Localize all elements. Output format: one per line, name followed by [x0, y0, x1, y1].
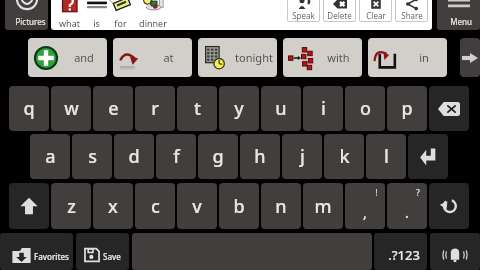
button[interactable]: b — [219, 183, 259, 229]
button[interactable]: p — [387, 86, 427, 131]
button[interactable]: Sound — [430, 233, 480, 270]
button[interactable]: what — [53, 0, 86, 30]
staticText: m — [314, 194, 332, 219]
staticText: q — [23, 96, 35, 121]
staticText: k — [339, 144, 350, 169]
staticText: x — [108, 194, 118, 219]
button[interactable]: w — [51, 86, 91, 131]
button[interactable]: is — [85, 0, 108, 30]
staticText: t — [194, 96, 201, 121]
staticText: in — [419, 50, 429, 65]
button[interactable]: for — [108, 0, 132, 30]
staticText: and — [74, 50, 94, 65]
staticText: Favorites — [34, 251, 69, 262]
staticText: n — [275, 194, 287, 219]
staticText: Speak — [292, 10, 315, 21]
staticText: ! — [375, 187, 378, 198]
staticText: Delete — [327, 10, 352, 21]
button[interactable]: a — [30, 134, 70, 179]
staticText: with — [327, 50, 350, 65]
staticText: p — [401, 96, 413, 121]
button[interactable]: at — [113, 38, 192, 77]
button[interactable]: i — [303, 86, 343, 131]
button[interactable]: g — [198, 134, 238, 179]
button[interactable]: n — [261, 183, 301, 229]
staticText: , — [363, 203, 367, 222]
button[interactable]: Save — [76, 233, 129, 270]
staticText: j — [300, 144, 305, 169]
button[interactable]: v — [177, 183, 217, 229]
button[interactable]: e — [93, 86, 133, 131]
staticText: Pictures — [15, 16, 46, 27]
button[interactable]: ! — [345, 183, 385, 229]
button[interactable]: More suggestions — [460, 38, 480, 77]
staticText: a — [45, 144, 56, 169]
button[interactable]: j — [282, 134, 322, 179]
button[interactable]: and — [28, 38, 107, 77]
button[interactable]: Share — [395, 0, 428, 22]
button[interactable]: m — [303, 183, 343, 229]
button[interactable]: Undo — [429, 183, 469, 229]
button[interactable]: y — [219, 86, 259, 131]
button[interactable]: o — [345, 86, 385, 131]
button[interactable]: k — [324, 134, 364, 179]
staticText: at — [163, 50, 174, 65]
button[interactable]: what — [51, 0, 432, 30]
staticText: .?123 — [388, 246, 420, 264]
staticText: l — [384, 144, 389, 169]
staticText: v — [192, 194, 202, 219]
button[interactable]: Clear — [359, 0, 392, 22]
button[interactable]: with — [283, 38, 362, 77]
staticText: Menu — [450, 16, 472, 27]
button[interactable]: Delete — [323, 0, 356, 22]
staticText: f — [173, 144, 180, 169]
button[interactable]: x — [93, 183, 133, 229]
staticText: w — [64, 96, 79, 121]
button[interactable]: r — [135, 86, 175, 131]
button[interactable]: Menu — [437, 0, 480, 30]
button[interactable]: d — [114, 134, 154, 179]
button[interactable]: tonight — [198, 38, 277, 77]
staticText: z — [67, 194, 76, 219]
staticText: Share — [401, 10, 423, 21]
staticText: what — [59, 17, 80, 29]
staticText: Save — [103, 251, 121, 262]
button[interactable]: h — [240, 134, 280, 179]
staticText: for — [114, 17, 127, 29]
staticText: e — [108, 96, 119, 121]
staticText: c — [151, 194, 160, 219]
button[interactable]: u — [261, 86, 301, 131]
staticText: u — [275, 96, 287, 121]
staticText: ? — [416, 187, 420, 198]
button[interactable]: Favorites — [0, 233, 73, 270]
staticText: h — [254, 144, 266, 169]
staticText: . — [405, 203, 409, 222]
button[interactable]: z — [51, 183, 91, 229]
button[interactable]: q — [9, 86, 49, 131]
button[interactable]: t — [177, 86, 217, 131]
staticText: is — [93, 17, 100, 29]
staticText: Clear — [366, 10, 386, 21]
button[interactable]: Pictures — [5, 0, 48, 30]
button[interactable]: Speak — [287, 0, 320, 22]
button[interactable]: ? — [387, 183, 427, 229]
button[interactable]: l — [366, 134, 406, 179]
button[interactable]: dinner — [132, 0, 173, 30]
staticText: tonight — [235, 50, 273, 65]
staticText: r — [151, 96, 159, 121]
button[interactable]: Shift — [9, 183, 49, 229]
staticText: o — [360, 96, 371, 121]
button[interactable]: Enter — [408, 134, 448, 179]
button[interactable]: Backspace — [429, 86, 469, 131]
staticText: s — [88, 144, 97, 169]
staticText: g — [212, 144, 224, 169]
staticText: d — [128, 144, 140, 169]
button[interactable]: c — [135, 183, 175, 229]
button[interactable]: f — [156, 134, 196, 179]
staticText: i — [321, 96, 326, 121]
button[interactable]: in — [368, 38, 447, 77]
button[interactable]: .?123 — [374, 233, 427, 270]
staticText: b — [233, 194, 245, 219]
button[interactable]: s — [72, 134, 112, 179]
